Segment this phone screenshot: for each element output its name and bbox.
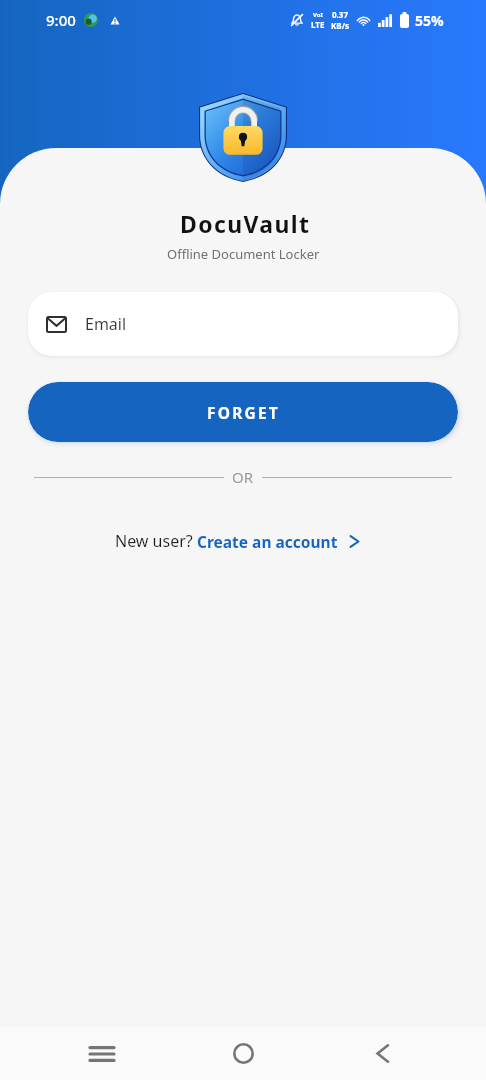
button[interactable]: Email: [28, 292, 458, 356]
staticText: Create an account: [197, 531, 338, 552]
button[interactable]: Recent apps: [72, 1027, 132, 1080]
staticText: Offline Document Locker: [167, 245, 320, 263]
staticText: OR: [232, 467, 254, 487]
button[interactable]: Back: [352, 1027, 412, 1080]
staticText: Email: [85, 313, 127, 335]
staticText: 55%: [415, 11, 444, 30]
staticText: KB/s: [331, 20, 349, 31]
button[interactable]: Home: [213, 1027, 273, 1080]
staticText: LTE: [311, 19, 325, 30]
staticText: 0.37: [332, 9, 348, 20]
button[interactable]: FORGET: [28, 382, 458, 442]
staticText: New user?: [115, 530, 197, 552]
button[interactable]: Create an account: [197, 526, 360, 556]
staticText: FORGET: [207, 402, 280, 423]
staticText: 9:00: [46, 10, 76, 30]
staticText: VoI: [313, 11, 323, 19]
staticText: DocuVault: [180, 208, 311, 239]
